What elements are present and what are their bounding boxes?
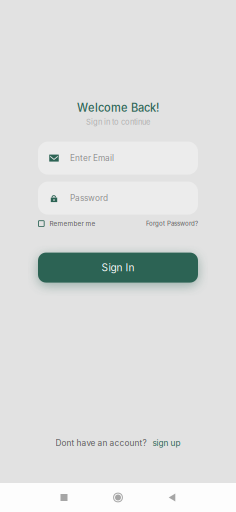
staticText: Enter Email	[70, 153, 114, 163]
button[interactable]: Forgot Password?	[146, 220, 198, 227]
button[interactable]: Back	[145, 483, 199, 512]
staticText: Welcome Back!	[77, 101, 159, 114]
button[interactable]: Home	[91, 483, 145, 512]
staticText: Sign in to continue	[86, 117, 150, 127]
button[interactable]: Remember me	[38, 220, 96, 227]
button[interactable]: Recents	[37, 483, 91, 512]
staticText: Dont have an account?	[55, 438, 146, 448]
staticText: Password	[70, 193, 108, 203]
staticText: Sign In	[101, 261, 134, 274]
staticText: sign up	[152, 438, 180, 448]
button[interactable]: sign up	[152, 438, 180, 448]
staticText: Forgot Password?	[146, 220, 198, 227]
button[interactable]: Sign In	[38, 253, 198, 283]
staticText: Remember me	[50, 220, 96, 227]
